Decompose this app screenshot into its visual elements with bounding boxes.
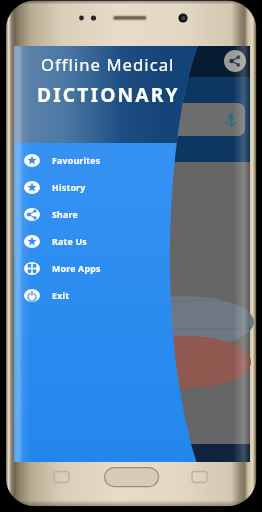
staticText: Share: [52, 209, 78, 221]
button[interactable]: Voice search: [54, 103, 245, 136]
button[interactable]: Exit: [14, 282, 250, 309]
staticText: History: [52, 182, 86, 194]
other: Voice search: [226, 113, 236, 127]
button[interactable]: Share: [224, 50, 246, 72]
staticText: Exit: [52, 290, 70, 302]
staticText: Favourites: [52, 155, 101, 167]
button[interactable]: Favourites: [14, 147, 250, 174]
button[interactable]: More Apps: [14, 255, 250, 282]
staticText: Offline Medical: [41, 53, 175, 76]
button[interactable]: History: [14, 174, 250, 201]
staticText: More Apps: [52, 263, 101, 275]
button[interactable]: Rate Us: [14, 228, 250, 255]
button[interactable]: Share: [14, 201, 250, 228]
staticText: DICTIONARY: [37, 81, 180, 107]
staticText: Rate Us: [52, 236, 87, 248]
